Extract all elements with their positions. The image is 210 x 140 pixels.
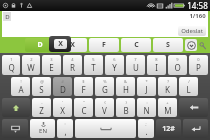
staticText: - xyxy=(41,100,43,105)
button[interactable]: 4 xyxy=(63,55,82,75)
button[interactable]: + xyxy=(158,98,177,117)
staticText: ; xyxy=(145,121,147,126)
staticText: L xyxy=(186,84,191,95)
button[interactable]: EN xyxy=(30,119,55,138)
button[interactable]: Shift xyxy=(2,98,30,117)
staticText: A xyxy=(18,84,24,95)
staticText: U xyxy=(133,62,139,73)
staticText: F xyxy=(81,84,86,95)
button[interactable]: Enter xyxy=(183,119,208,138)
button[interactable]: ( xyxy=(95,98,114,117)
button[interactable]: ) xyxy=(116,98,135,117)
staticText: $ xyxy=(82,79,85,84)
staticText: ! xyxy=(20,79,22,84)
staticText: P xyxy=(196,62,201,73)
staticText: 3 xyxy=(50,57,53,62)
button[interactable]: D xyxy=(25,38,55,52)
staticText: 14:58 xyxy=(187,0,208,11)
staticText: 7 xyxy=(134,57,137,62)
staticText: , xyxy=(64,126,67,137)
staticText: % xyxy=(103,79,107,84)
staticText: M xyxy=(164,105,172,116)
staticText: W xyxy=(27,62,35,73)
button[interactable]: X xyxy=(57,38,87,52)
staticText: # xyxy=(61,79,64,84)
button[interactable]: S xyxy=(153,38,183,52)
staticText: : xyxy=(64,121,66,126)
staticText: 4 xyxy=(71,57,74,62)
button[interactable]: 9 xyxy=(168,55,187,75)
staticText: 5 xyxy=(92,57,95,62)
button[interactable]: : xyxy=(57,119,73,138)
staticText: Z xyxy=(39,105,44,116)
staticText: S xyxy=(166,40,170,50)
button[interactable]: ? xyxy=(158,77,177,96)
staticText: D xyxy=(60,84,66,95)
button[interactable]: Odeslat xyxy=(181,27,203,35)
button[interactable]: More suggestions xyxy=(185,39,197,51)
button[interactable] xyxy=(75,119,136,138)
staticText: N xyxy=(143,105,150,116)
staticText: T xyxy=(91,62,96,73)
staticText: I xyxy=(155,62,158,73)
button[interactable]: * xyxy=(137,77,156,96)
staticText: 8 xyxy=(155,57,158,62)
button[interactable]: 3 xyxy=(42,55,61,75)
button[interactable]: C xyxy=(121,38,151,52)
staticText: 1/160 xyxy=(189,12,206,20)
button[interactable]: 8 xyxy=(147,55,166,75)
staticText: 6 xyxy=(113,57,116,62)
button[interactable]: 7 xyxy=(126,55,145,75)
button[interactable]: Hide keyboard xyxy=(2,119,28,138)
button[interactable]: 2 xyxy=(22,55,40,75)
staticText: 12# xyxy=(162,124,175,134)
button[interactable]: 6 xyxy=(105,55,124,75)
staticText: 9 xyxy=(176,57,179,62)
staticText: X xyxy=(70,40,75,50)
button[interactable]: 5 xyxy=(84,55,103,75)
staticText: S xyxy=(39,84,44,95)
button[interactable]: % xyxy=(95,77,114,96)
button[interactable]: Input settings xyxy=(197,40,208,51)
button[interactable]: 0 xyxy=(189,55,208,75)
staticText: E xyxy=(49,62,54,73)
button[interactable]: ! xyxy=(11,77,30,96)
button[interactable]: ' xyxy=(53,98,72,117)
button[interactable]: - xyxy=(32,98,51,117)
staticText: * xyxy=(145,79,148,84)
button[interactable]: Backspace xyxy=(179,98,208,117)
staticText: @ xyxy=(40,79,44,84)
staticText: 1 xyxy=(10,57,13,62)
staticText: 0 xyxy=(197,57,200,62)
staticText: G xyxy=(102,84,108,95)
staticText: C xyxy=(81,105,87,116)
staticText: B xyxy=(123,105,129,116)
button[interactable]: / xyxy=(179,77,198,96)
staticText: C xyxy=(134,40,139,50)
button[interactable]: # xyxy=(53,77,72,96)
staticText: & xyxy=(124,79,127,84)
button[interactable]: Symbols xyxy=(156,119,181,138)
button[interactable]: F xyxy=(89,38,119,52)
button[interactable]: : xyxy=(137,98,156,117)
button[interactable]: " xyxy=(74,98,93,117)
staticText: EN xyxy=(39,127,47,135)
staticText: O xyxy=(174,62,181,73)
staticText: J xyxy=(145,84,148,95)
button[interactable]: $ xyxy=(74,77,93,96)
staticText: V xyxy=(102,105,107,116)
button[interactable]: ; xyxy=(138,119,154,138)
staticText: ) xyxy=(125,100,127,105)
staticText: X xyxy=(60,105,65,116)
staticText: : xyxy=(146,100,148,105)
staticText: . xyxy=(145,126,148,137)
button[interactable]: & xyxy=(116,77,135,96)
staticText: Y xyxy=(112,62,117,73)
staticText: F xyxy=(102,40,106,50)
button[interactable]: 1 xyxy=(2,55,20,75)
staticText: + xyxy=(166,100,169,105)
staticText: D xyxy=(5,13,10,21)
staticText: / xyxy=(188,79,190,84)
button[interactable]: @ xyxy=(32,77,51,96)
staticText: Q xyxy=(8,62,15,73)
